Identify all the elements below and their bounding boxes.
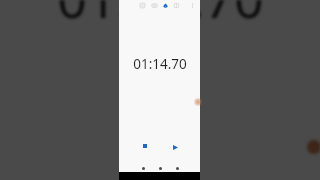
button[interactable]: More options: [189, 2, 196, 9]
button[interactable]: Home: [155, 163, 165, 173]
button[interactable]: Layout: [173, 2, 180, 9]
button[interactable]: Select: [139, 2, 146, 9]
button[interactable]: Start: [166, 138, 184, 156]
staticText: 01:14.70: [133, 55, 187, 71]
staticText: 01:14.70: [57, 0, 264, 33]
button[interactable]: Back: [138, 163, 148, 173]
button[interactable]: Stop: [136, 137, 154, 155]
button[interactable]: Screenshot: [151, 2, 158, 9]
button[interactable]: Location: [162, 2, 169, 9]
button[interactable]: Recents: [172, 163, 182, 173]
